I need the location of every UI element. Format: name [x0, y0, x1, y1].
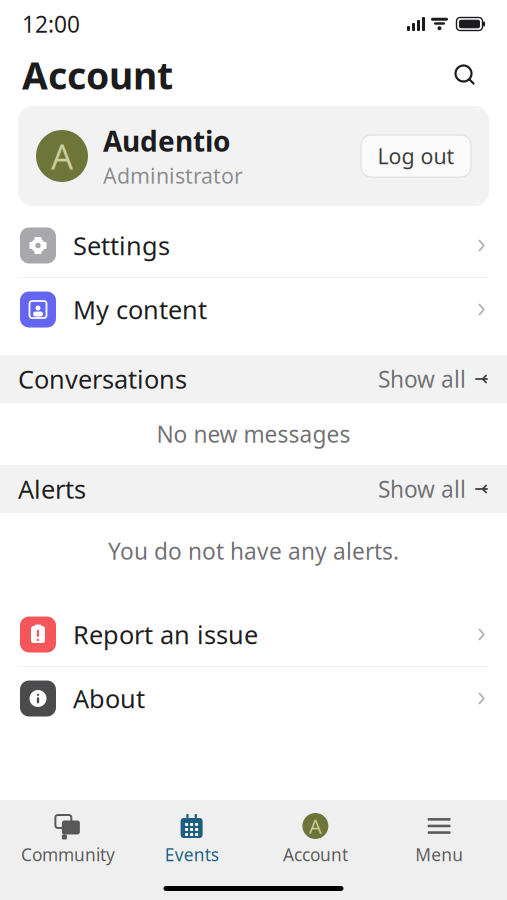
button[interactable]: Menu: [377, 806, 501, 872]
staticText: Show all: [378, 474, 466, 504]
staticText: Log out: [377, 142, 454, 170]
button[interactable]: Events: [130, 806, 254, 872]
staticText: Menu: [415, 843, 463, 866]
button[interactable]: My content: [0, 278, 507, 341]
staticText: Report an issue: [73, 618, 258, 651]
staticText: Alerts: [18, 472, 86, 506]
button[interactable]: Show all: [368, 358, 489, 400]
staticText: A: [309, 813, 322, 839]
button[interactable]: Show all: [368, 468, 489, 510]
button[interactable]: Search: [445, 55, 485, 95]
staticText: A: [51, 133, 73, 179]
staticText: Audentio: [103, 122, 231, 159]
staticText: About: [73, 682, 145, 715]
staticText: Community: [21, 843, 115, 866]
button[interactable]: A: [253, 806, 377, 872]
staticText: Administrator: [103, 161, 243, 190]
button[interactable]: Community: [6, 806, 130, 872]
button[interactable]: A: [0, 102, 507, 206]
button[interactable]: About: [0, 667, 507, 730]
staticText: Events: [165, 843, 219, 866]
staticText: My content: [73, 293, 207, 326]
staticText: Conversations: [18, 362, 187, 396]
staticText: Settings: [73, 229, 170, 262]
staticText: Account: [22, 50, 173, 100]
staticText: 12:00: [22, 9, 80, 39]
staticText: Account: [283, 843, 348, 866]
button[interactable]: Report an issue: [0, 603, 507, 666]
staticText: You do not have any alerts.: [108, 536, 399, 566]
button[interactable]: Settings: [0, 214, 507, 277]
staticText: No new messages: [156, 419, 350, 449]
staticText: Show all: [378, 364, 466, 394]
